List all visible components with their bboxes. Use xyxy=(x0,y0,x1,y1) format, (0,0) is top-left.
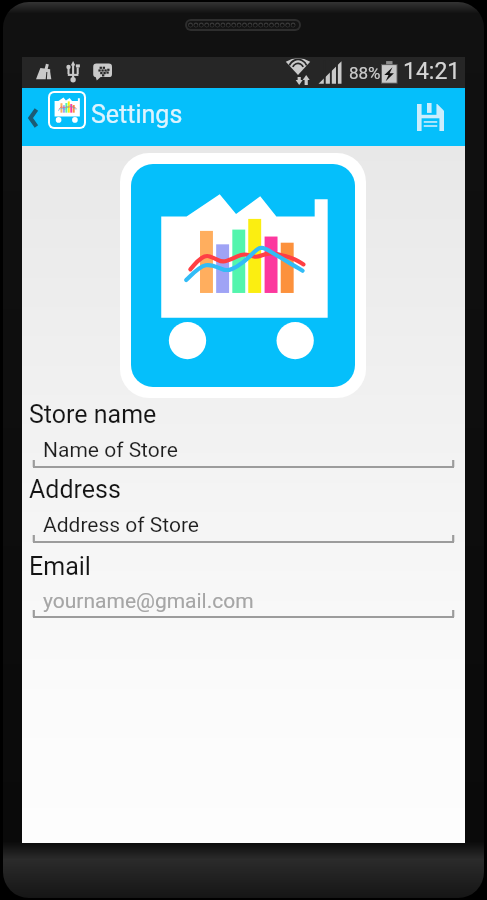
button[interactable]: Save xyxy=(417,104,444,131)
button[interactable]: yourname@gmail.com xyxy=(33,579,454,615)
staticText: Address xyxy=(29,475,121,504)
staticText: Name of Store xyxy=(43,438,178,463)
staticText: Address of Store xyxy=(43,513,199,538)
button[interactable]: Name of Store xyxy=(33,428,454,464)
staticText: Email xyxy=(29,552,91,581)
staticText: 88% xyxy=(349,63,381,83)
staticText: yourname@gmail.com xyxy=(43,589,254,614)
staticText: 14:21 xyxy=(403,58,461,85)
staticText: Store name xyxy=(29,400,157,429)
staticText: Settings xyxy=(91,100,183,129)
button[interactable]: Navigate up xyxy=(22,88,69,146)
button[interactable]: Address of Store xyxy=(33,503,454,539)
